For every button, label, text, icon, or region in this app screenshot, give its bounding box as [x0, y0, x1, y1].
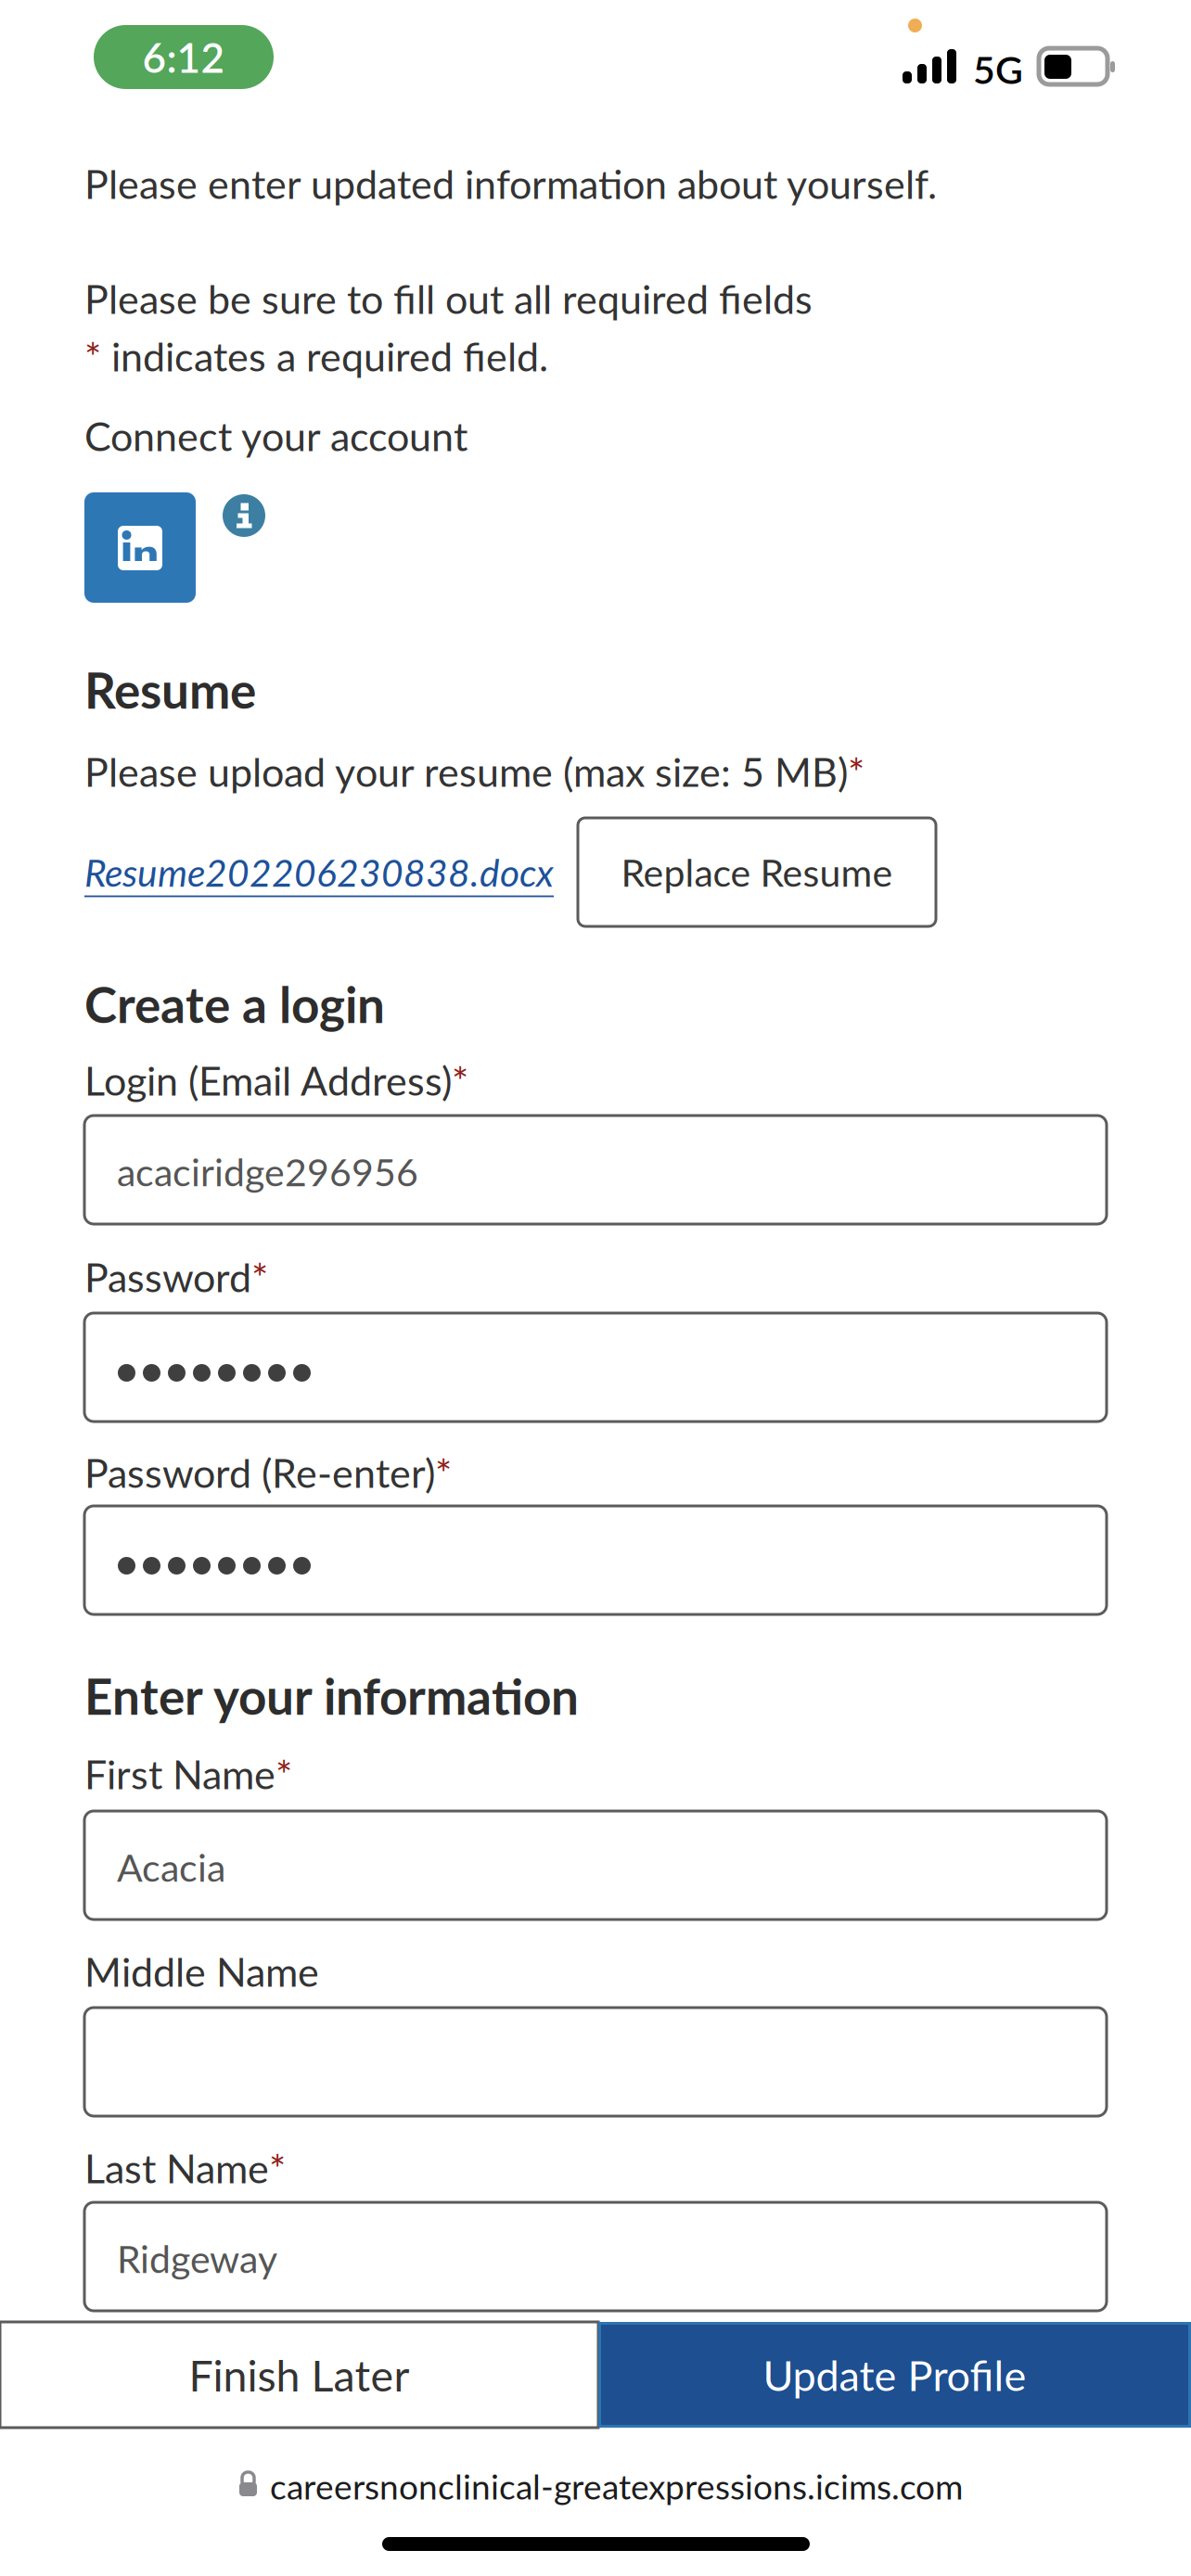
- button[interactable]: Finish Later: [0, 2322, 598, 2428]
- staticText: Password (Re-enter): [84, 1448, 435, 1496]
- button[interactable]: Update Profile: [598, 2322, 1191, 2428]
- staticText: First Name: [84, 1750, 275, 1798]
- staticText: Connect your account: [84, 412, 467, 460]
- staticText: Replace Resume: [621, 849, 893, 895]
- staticText: Please upload your resume (max size: 5 M…: [84, 747, 848, 795]
- button[interactable]: Connect with LinkedIn: [84, 492, 196, 603]
- staticText: Resume: [84, 660, 256, 719]
- button[interactable]: Resume202206230838.docx: [84, 849, 554, 895]
- staticText: Login (Email Address): [84, 1056, 452, 1104]
- staticText: Enter your information: [84, 1666, 579, 1725]
- staticText: Update Profile: [763, 2350, 1026, 2400]
- staticText: Please enter updated information about y…: [84, 159, 937, 207]
- staticText: indicates a required field.: [101, 332, 548, 380]
- button[interactable]: About connecting your account: [223, 494, 265, 537]
- staticText: *: [251, 1253, 268, 1301]
- staticText: Please be sure to fill out all required …: [84, 274, 813, 322]
- staticText: Finish Later: [189, 2349, 410, 2401]
- staticText: 5G: [973, 46, 1023, 92]
- staticText: *: [275, 1750, 292, 1798]
- staticText: Acacia: [117, 1844, 225, 1890]
- staticText: Middle Name: [84, 1947, 319, 1995]
- staticText: *: [84, 332, 101, 380]
- button[interactable]: Replace Resume: [578, 818, 936, 926]
- staticText: Password: [84, 1253, 251, 1301]
- staticText: *: [848, 747, 864, 795]
- staticText: Ridgeway: [117, 2236, 277, 2281]
- staticText: *: [435, 1448, 452, 1496]
- staticText: 6:12: [142, 33, 225, 82]
- staticText: acaciridge296956: [117, 1149, 418, 1194]
- staticText: *: [269, 2144, 286, 2192]
- staticText: Resume202206230838.docx: [84, 849, 554, 895]
- staticText: Last Name: [84, 2144, 269, 2192]
- staticText: careersnonclinical-greatexpressions.icim…: [270, 2466, 963, 2507]
- staticText: *: [452, 1056, 468, 1104]
- staticText: Create a login: [84, 975, 385, 1034]
